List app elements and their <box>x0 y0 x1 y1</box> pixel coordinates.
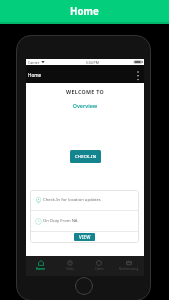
staticText: Check-In for location updates <box>43 197 101 203</box>
button[interactable]: Visits <box>55 256 84 276</box>
button[interactable]: Check-In for location updates <box>30 190 139 210</box>
other: Home button <box>75 277 93 295</box>
staticText: 5:04 PM <box>86 60 99 65</box>
button[interactable]: Reimbursing <box>114 256 144 276</box>
staticText: Home <box>70 5 99 18</box>
button[interactable]: Home <box>26 256 55 276</box>
staticText: On Duty From NA <box>43 218 78 224</box>
staticText: Claim <box>95 267 104 271</box>
staticText: Overview <box>26 102 144 109</box>
staticText: VIEW <box>79 234 91 240</box>
staticText: Home <box>28 72 42 78</box>
staticText: Home <box>36 267 46 271</box>
button[interactable]: More options <box>133 71 143 81</box>
staticText: Reimbursing <box>119 267 139 271</box>
staticText: Carrier <box>28 60 40 65</box>
button[interactable]: VIEW <box>74 233 95 241</box>
button[interactable]: On Duty From NA <box>30 211 139 231</box>
staticText: Visits <box>66 267 74 271</box>
staticText: WELCOME TO <box>26 88 144 95</box>
staticText: CHECK-IN <box>75 154 97 160</box>
button[interactable]: CHECK-IN <box>70 150 101 163</box>
button[interactable]: Claim <box>84 256 114 276</box>
